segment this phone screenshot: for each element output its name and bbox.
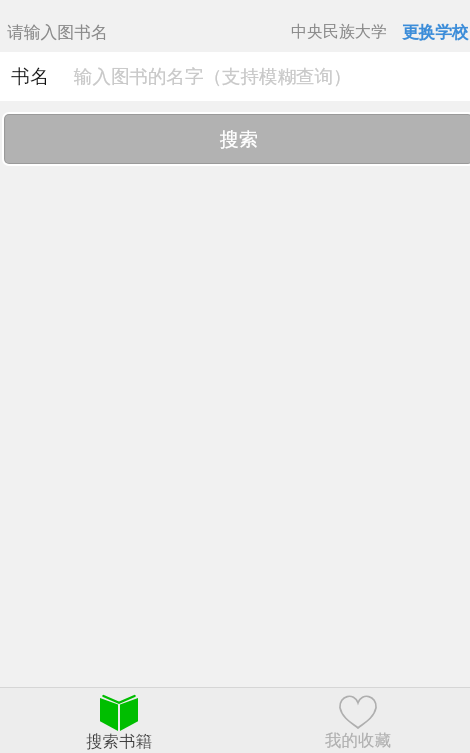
button[interactable]: 书名 [0, 52, 470, 101]
staticText: 书名 [11, 65, 49, 89]
button[interactable]: 更换学校 [402, 22, 468, 43]
staticText: 输入图书的名字（支持模糊查询） [74, 65, 352, 88]
staticText: 搜索书籍 [86, 731, 152, 752]
staticText: 更换学校 [402, 22, 468, 43]
staticText: 搜索 [220, 128, 258, 152]
staticText: 中央民族大学 [291, 22, 387, 42]
button[interactable]: 我的收藏 [238, 688, 470, 753]
button[interactable]: 搜索 [2, 112, 470, 166]
staticText: 我的收藏 [325, 730, 391, 751]
button[interactable]: 搜索书籍 [0, 688, 238, 753]
other: 我的收藏 [339, 694, 377, 728]
staticText: 请输入图书名 [7, 22, 108, 43]
